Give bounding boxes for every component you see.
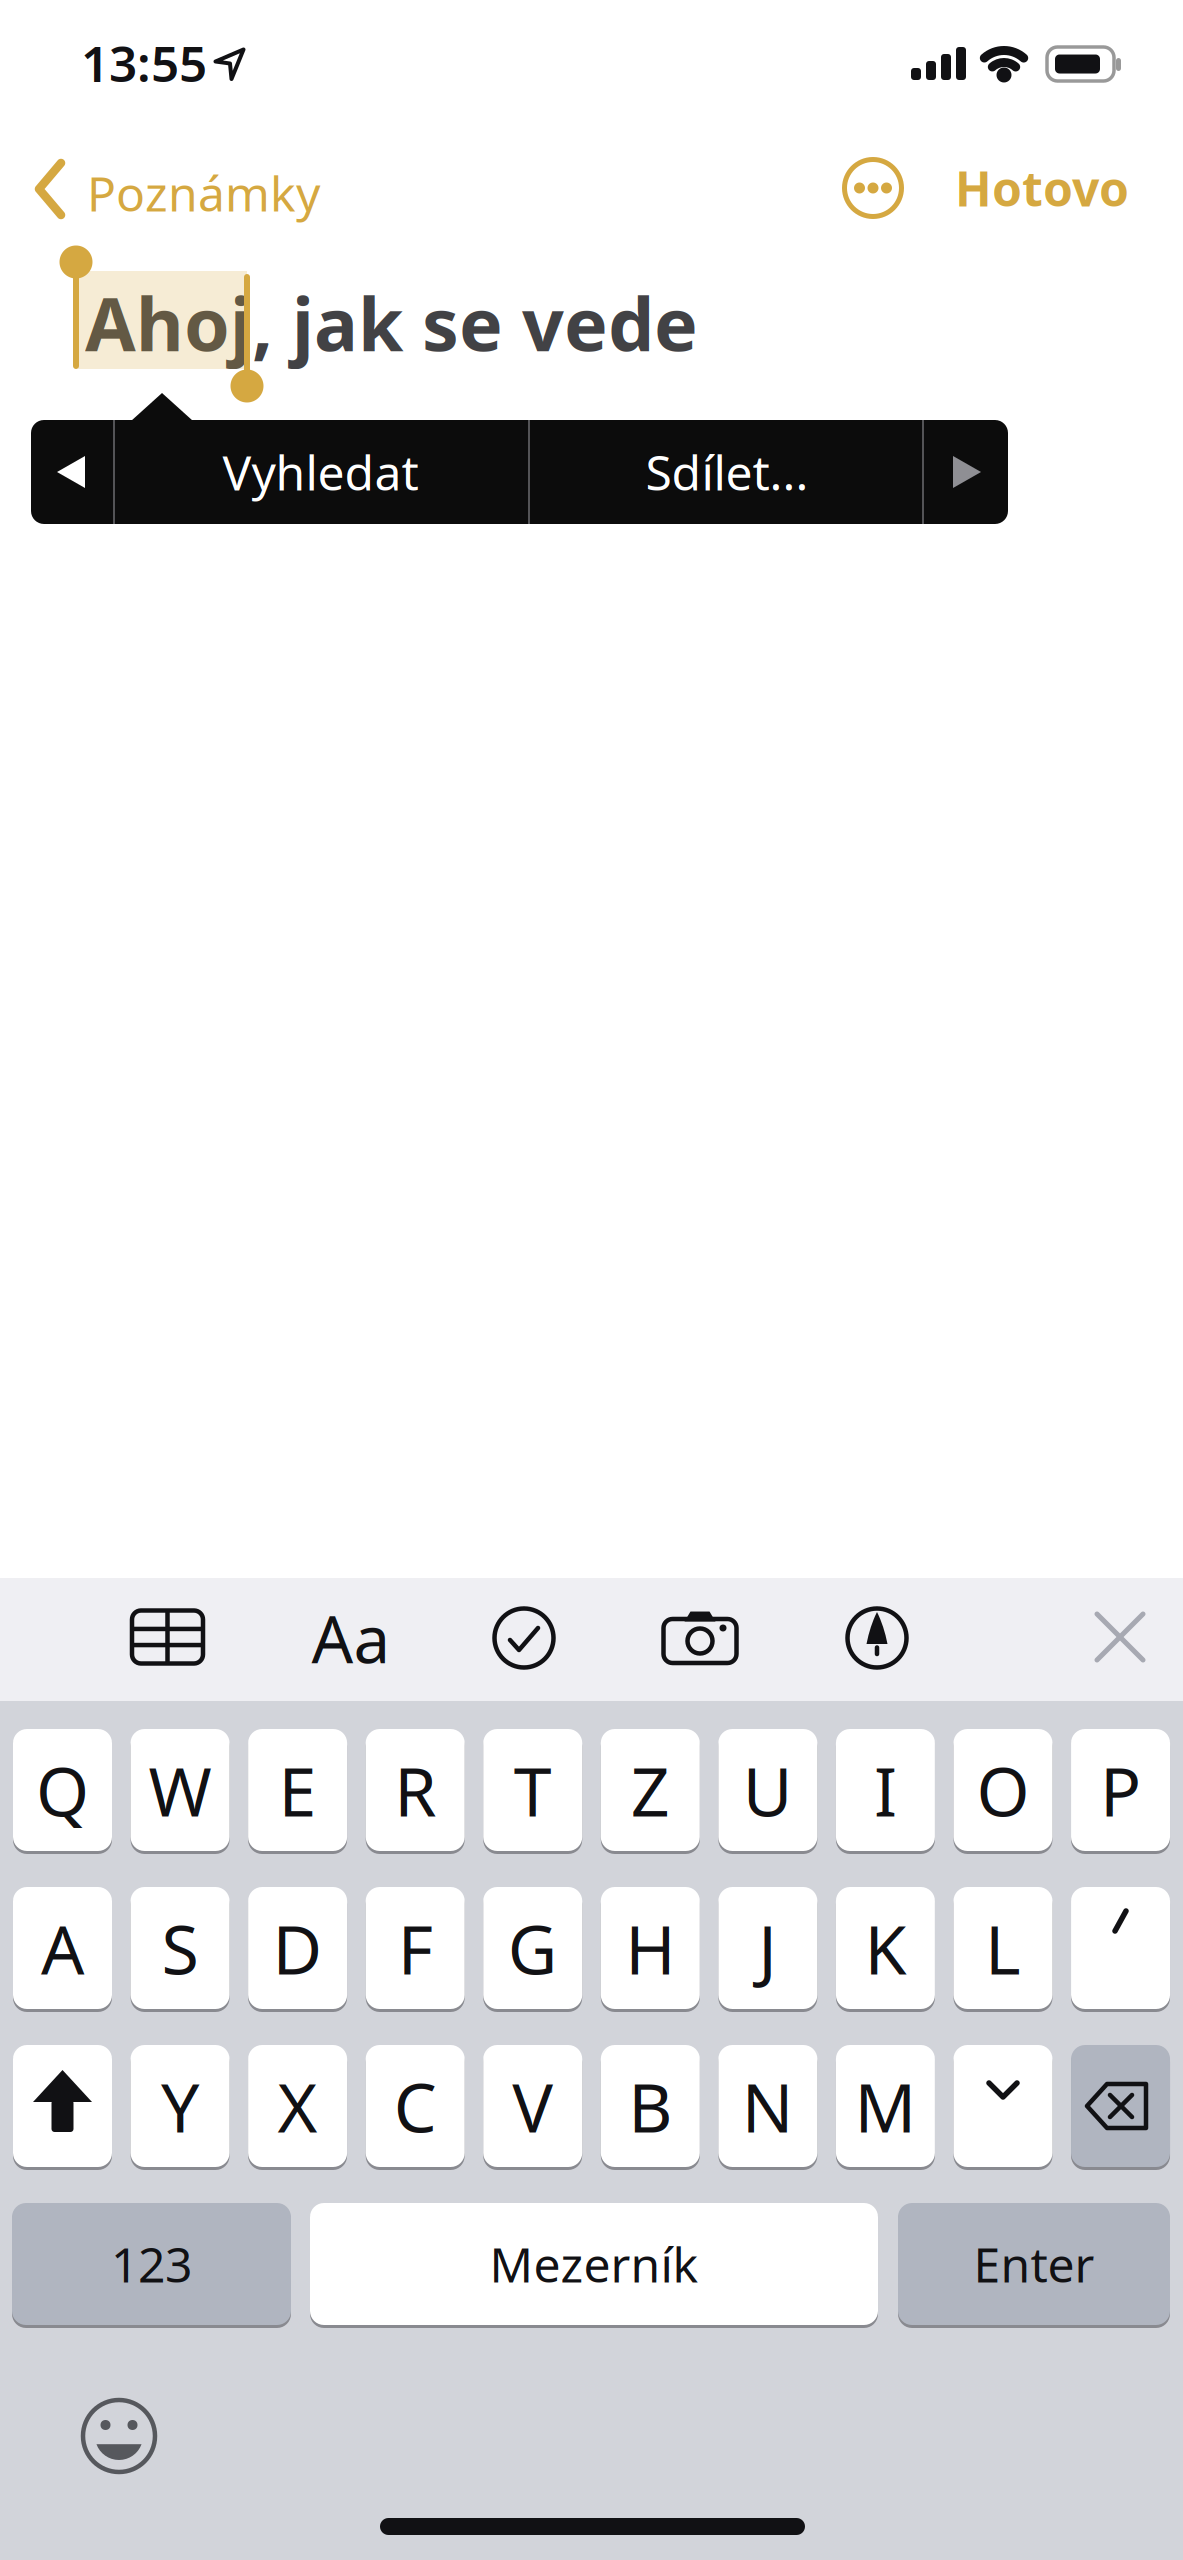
button[interactable]: N xyxy=(718,2045,817,2167)
staticText: P xyxy=(1100,1745,1141,1835)
staticText: F xyxy=(398,1903,433,1993)
button[interactable]: H xyxy=(601,1887,700,2009)
button[interactable]: T xyxy=(483,1729,582,1851)
button[interactable]: Smazat xyxy=(1071,2045,1170,2167)
button[interactable]: Více xyxy=(842,157,904,219)
button[interactable]: A xyxy=(13,1887,112,2009)
button[interactable]: Sdílet... xyxy=(531,420,923,524)
staticText: C xyxy=(394,2061,437,2151)
staticText: O xyxy=(976,1745,1029,1835)
button[interactable]: Zavřít xyxy=(1097,1614,1143,1660)
button[interactable]: P xyxy=(1071,1729,1170,1851)
button[interactable]: Mezerník xyxy=(310,2203,878,2325)
staticText: T xyxy=(514,1745,552,1835)
button[interactable]: G xyxy=(483,1887,582,2009)
button[interactable]: Další xyxy=(924,420,1008,524)
staticText: U xyxy=(743,1745,793,1835)
staticText: Mezerník xyxy=(489,2232,698,2296)
staticText: Z xyxy=(631,1745,670,1835)
button[interactable]: V xyxy=(483,2045,582,2167)
button[interactable]: Čárka xyxy=(1071,1887,1170,2009)
staticText: Ahoj, jak se vede xyxy=(85,274,698,371)
staticText: B xyxy=(628,2061,672,2151)
button[interactable]: Hotovo xyxy=(899,153,1129,223)
staticText: Y xyxy=(161,2061,199,2151)
staticText: I xyxy=(874,1745,897,1835)
staticText: 123 xyxy=(111,2232,192,2296)
staticText: V xyxy=(512,2061,553,2151)
button[interactable]: W xyxy=(131,1729,230,1851)
staticText: M xyxy=(854,2061,916,2151)
button[interactable]: L xyxy=(953,1887,1052,2009)
staticText: L xyxy=(985,1903,1021,1993)
staticText: Sdílet... xyxy=(645,440,808,504)
button[interactable]: I xyxy=(836,1729,935,1851)
button[interactable]: Poznámky xyxy=(30,150,330,228)
staticText: W xyxy=(149,1745,212,1835)
button[interactable]: Předchozí xyxy=(31,420,113,524)
staticText: Poznámky xyxy=(87,161,320,225)
staticText: K xyxy=(864,1903,906,1993)
staticText: Enter xyxy=(973,2232,1094,2296)
button[interactable]: S xyxy=(131,1887,230,2009)
button[interactable]: Tabulka xyxy=(132,1610,203,1663)
button[interactable]: C xyxy=(366,2045,465,2167)
button[interactable]: X xyxy=(248,2045,347,2167)
button[interactable]: Y xyxy=(131,2045,230,2167)
staticText: R xyxy=(394,1745,436,1835)
button[interactable]: Značky xyxy=(845,1606,909,1670)
button[interactable]: Emoji xyxy=(81,2398,157,2474)
staticText: Vyhledat xyxy=(222,440,418,504)
button[interactable]: R xyxy=(366,1729,465,1851)
button[interactable]: Fotoaparát xyxy=(663,1610,736,1663)
button[interactable]: M xyxy=(836,2045,935,2167)
button[interactable]: E xyxy=(248,1729,347,1851)
staticText: 13:55 xyxy=(81,30,207,95)
staticText: J xyxy=(758,1903,777,1993)
button[interactable]: Enter xyxy=(898,2203,1170,2325)
button[interactable]: U xyxy=(718,1729,817,1851)
staticText: Hotovo xyxy=(955,156,1129,220)
staticText: Aa xyxy=(311,1595,390,1681)
button[interactable]: O xyxy=(953,1729,1052,1851)
staticText: H xyxy=(625,1903,675,1993)
staticText: A xyxy=(41,1903,84,1993)
staticText: D xyxy=(273,1903,323,1993)
button[interactable]: Seznam úkolů xyxy=(492,1606,556,1670)
button[interactable]: Q xyxy=(13,1729,112,1851)
button[interactable]: J xyxy=(718,1887,817,2009)
button[interactable]: Vyhledat xyxy=(114,420,527,524)
button[interactable]: Formát xyxy=(311,1595,390,1681)
button[interactable]: B xyxy=(601,2045,700,2167)
button[interactable]: Shift xyxy=(13,2045,112,2167)
button[interactable]: F xyxy=(366,1887,465,2009)
staticText: S xyxy=(162,1903,199,1993)
staticText: E xyxy=(279,1745,317,1835)
staticText: X xyxy=(278,2061,318,2151)
staticText: G xyxy=(508,1903,558,1993)
button[interactable]: Z xyxy=(601,1729,700,1851)
staticText: N xyxy=(742,2061,794,2151)
button[interactable]: K xyxy=(836,1887,935,2009)
staticText: Q xyxy=(36,1745,89,1835)
button[interactable]: Háček xyxy=(953,2045,1052,2167)
button[interactable]: 123 xyxy=(12,2203,291,2325)
button[interactable]: D xyxy=(248,1887,347,2009)
